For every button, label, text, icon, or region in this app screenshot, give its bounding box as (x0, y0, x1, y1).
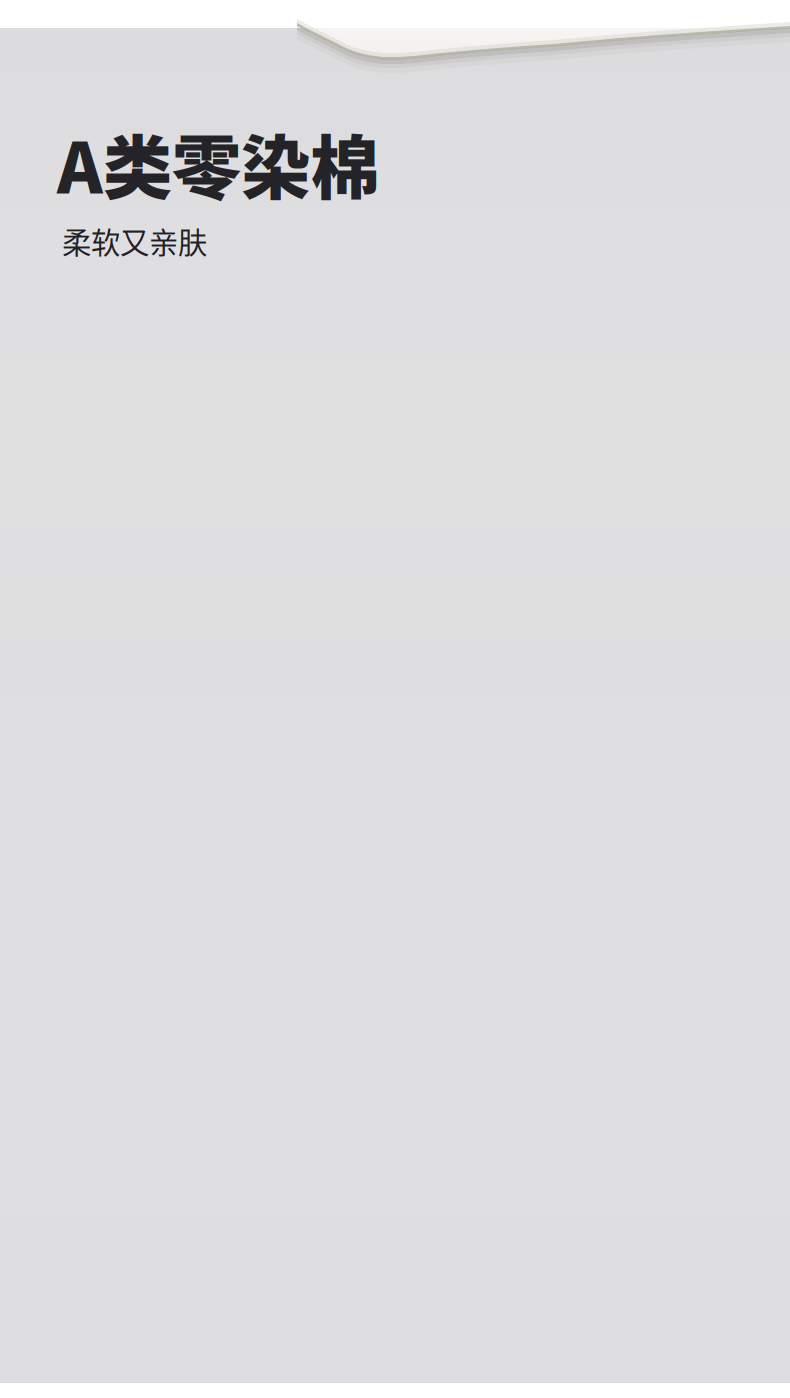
staticText: 柔软又亲肤 (62, 219, 207, 262)
staticText: A类零染棉 (57, 113, 379, 213)
